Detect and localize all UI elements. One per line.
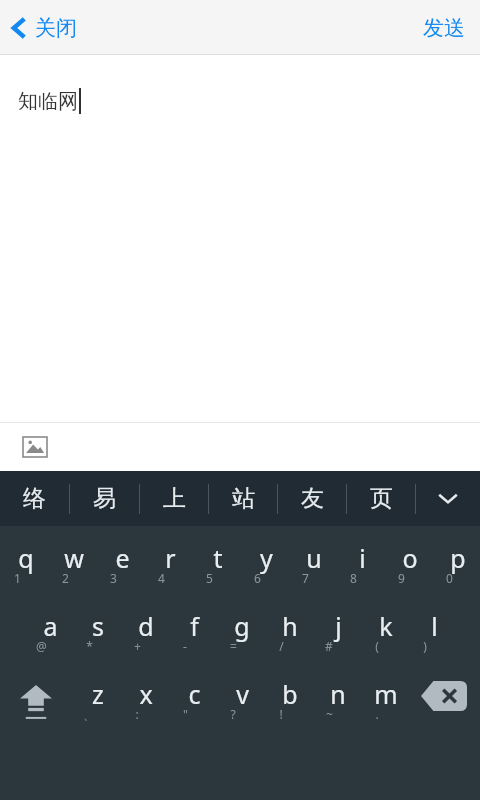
staticText: * bbox=[86, 638, 93, 654]
staticText: s bbox=[92, 609, 104, 643]
button[interactable]: 站 bbox=[209, 471, 277, 526]
button[interactable]: j bbox=[312, 598, 360, 666]
button[interactable]: v bbox=[216, 666, 264, 734]
staticText: 友 bbox=[301, 484, 324, 513]
staticText: 4 bbox=[158, 570, 165, 586]
staticText: 络 bbox=[23, 484, 46, 513]
button[interactable]: l bbox=[408, 598, 456, 666]
button[interactable]: s bbox=[72, 598, 120, 666]
staticText: w bbox=[64, 541, 84, 575]
button[interactable]: h bbox=[264, 598, 312, 666]
button[interactable]: d bbox=[120, 598, 168, 666]
staticText: x bbox=[139, 677, 153, 711]
staticText: j bbox=[335, 609, 342, 643]
staticText: ~ bbox=[326, 706, 333, 722]
button[interactable]: 知临网 bbox=[0, 55, 480, 422]
staticText: e bbox=[115, 541, 130, 575]
button[interactable]: n bbox=[312, 666, 360, 734]
staticText: - bbox=[183, 638, 187, 654]
button[interactable]: 络 bbox=[0, 471, 69, 526]
button[interactable]: 友 bbox=[278, 471, 346, 526]
staticText: f bbox=[190, 609, 199, 643]
staticText: : bbox=[135, 706, 139, 722]
staticText: ) bbox=[423, 638, 427, 654]
staticText: 上 bbox=[163, 484, 186, 513]
staticText: 8 bbox=[350, 570, 357, 586]
staticText: 知临网 bbox=[18, 89, 78, 114]
button[interactable]: e bbox=[96, 530, 144, 598]
staticText: r bbox=[165, 541, 176, 575]
staticText: / bbox=[279, 638, 284, 654]
staticText: . bbox=[375, 706, 379, 722]
button[interactable]: Hide keyboard bbox=[416, 471, 480, 526]
button[interactable]: 关闭 bbox=[0, 9, 91, 47]
button[interactable]: Insert image bbox=[20, 432, 50, 462]
staticText: v bbox=[236, 677, 249, 711]
staticText: d bbox=[138, 609, 154, 643]
staticText: ( bbox=[375, 638, 379, 654]
button[interactable]: i bbox=[336, 530, 384, 598]
staticText: u bbox=[306, 541, 322, 575]
staticText: l bbox=[431, 609, 438, 643]
staticText: ? bbox=[230, 706, 236, 722]
staticText: a bbox=[43, 609, 58, 643]
staticText: o bbox=[402, 541, 418, 575]
staticText: 0 bbox=[446, 570, 453, 586]
button[interactable]: p bbox=[432, 530, 480, 598]
staticText: 关闭 bbox=[35, 15, 77, 41]
staticText: m bbox=[374, 677, 398, 711]
button[interactable]: b bbox=[264, 666, 312, 734]
button[interactable]: z bbox=[72, 666, 120, 734]
button[interactable]: 易 bbox=[70, 471, 139, 526]
staticText: q bbox=[18, 541, 34, 575]
button[interactable]: c bbox=[168, 666, 216, 734]
staticText: 7 bbox=[302, 570, 309, 586]
staticText: 站 bbox=[232, 484, 255, 513]
button[interactable]: w bbox=[48, 530, 96, 598]
button[interactable]: x bbox=[120, 666, 168, 734]
staticText: 、 bbox=[83, 707, 95, 722]
button[interactable]: 发送 bbox=[408, 7, 480, 49]
staticText: 2 bbox=[62, 570, 69, 586]
button[interactable]: 上 bbox=[140, 471, 208, 526]
staticText: c bbox=[188, 677, 201, 711]
staticText: 5 bbox=[206, 570, 213, 586]
staticText: @ bbox=[36, 638, 47, 654]
button[interactable]: u bbox=[288, 530, 336, 598]
button[interactable]: o bbox=[384, 530, 432, 598]
staticText: n bbox=[330, 677, 346, 711]
button[interactable]: t bbox=[192, 530, 240, 598]
staticText: ! bbox=[279, 706, 283, 722]
button[interactable]: 页 bbox=[347, 471, 415, 526]
staticText: 发送 bbox=[423, 15, 465, 41]
button[interactable]: g bbox=[216, 598, 264, 666]
staticText: h bbox=[282, 609, 298, 643]
staticText: # bbox=[325, 638, 333, 654]
button[interactable]: a bbox=[24, 598, 72, 666]
button[interactable]: q bbox=[0, 530, 48, 598]
staticText: 易 bbox=[93, 484, 116, 513]
staticText: p bbox=[450, 541, 466, 575]
staticText: k bbox=[379, 609, 393, 643]
staticText: i bbox=[359, 541, 366, 575]
button[interactable]: m bbox=[360, 666, 408, 734]
button[interactable]: k bbox=[360, 598, 408, 666]
button[interactable]: f bbox=[168, 598, 216, 666]
staticText: 1 bbox=[14, 570, 21, 586]
staticText: z bbox=[92, 677, 104, 711]
staticText: 页 bbox=[370, 484, 393, 513]
staticText: t bbox=[213, 541, 223, 575]
button[interactable]: r bbox=[144, 530, 192, 598]
staticText: + bbox=[134, 638, 141, 654]
staticText: g bbox=[234, 609, 250, 643]
button[interactable]: Shift bbox=[0, 666, 72, 734]
staticText: b bbox=[282, 677, 298, 711]
staticText: " bbox=[183, 706, 188, 722]
button[interactable]: y bbox=[240, 530, 288, 598]
staticText: 3 bbox=[110, 570, 117, 586]
button[interactable]: Backspace bbox=[408, 666, 480, 734]
staticText: = bbox=[230, 638, 237, 654]
staticText: 9 bbox=[398, 570, 405, 586]
staticText: 6 bbox=[254, 570, 261, 586]
staticText: y bbox=[260, 541, 273, 575]
